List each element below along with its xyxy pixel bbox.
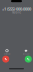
button[interactable]: Message — [20, 49, 31, 55]
staticText: mobile — [11, 11, 21, 14]
staticText: Remind Me — [3, 53, 10, 55]
staticText: +1 (555) 000-0000 — [2, 6, 31, 12]
staticText: Message — [22, 53, 29, 55]
button[interactable]: Decline — [2, 56, 9, 63]
button[interactable]: Accept — [25, 56, 32, 63]
button[interactable]: Remind Me — [1, 49, 12, 55]
